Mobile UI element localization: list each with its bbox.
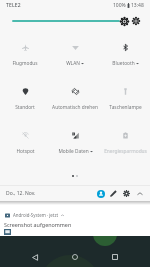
staticText: Taschenlampe	[109, 104, 142, 111]
button[interactable]: Edit	[107, 187, 120, 200]
button[interactable]: Auto brightness	[131, 16, 141, 26]
staticText: Screenshot aufgenommen	[4, 221, 72, 228]
button[interactable]: Taschenlampe	[100, 74, 150, 118]
button[interactable]: Automatisch drehen	[50, 74, 100, 118]
staticText: Energiesparmodus	[104, 148, 147, 155]
staticText: 13:48	[131, 2, 144, 9]
staticText: Hotspot	[16, 148, 35, 155]
staticText: Do., 12. Nov.	[6, 190, 36, 197]
staticText: TELE2	[6, 2, 21, 9]
button[interactable]: Hotspot	[0, 118, 50, 162]
staticText: 100%	[113, 2, 126, 9]
button[interactable]: Android-System · jetzt	[0, 205, 150, 236]
staticText: Android-System · jetzt	[13, 212, 59, 218]
button[interactable]: Brightness	[119, 16, 129, 26]
staticText: Bluetooth	[112, 60, 135, 67]
button[interactable]: Settings	[120, 187, 133, 200]
staticText: Flugmodus	[12, 60, 38, 67]
button[interactable]: Energiesparmodus	[100, 118, 150, 162]
button[interactable]: Standort	[0, 74, 50, 118]
button[interactable]: Home	[65, 247, 85, 267]
staticText: Standort	[15, 104, 35, 111]
button[interactable]: User	[94, 187, 107, 200]
staticText: Mobile Daten	[58, 148, 89, 155]
staticText: Automatisch drehen	[52, 104, 98, 111]
button[interactable]: Recents	[105, 247, 125, 267]
button[interactable]: Back	[25, 247, 45, 267]
button[interactable]: WLAN	[50, 30, 100, 74]
button[interactable]: Collapse	[133, 187, 146, 200]
button[interactable]: Flugmodus	[0, 30, 50, 74]
button[interactable]: Mobile Daten	[50, 118, 100, 162]
button[interactable]: Bluetooth	[100, 30, 150, 74]
staticText: WLAN	[66, 60, 80, 67]
